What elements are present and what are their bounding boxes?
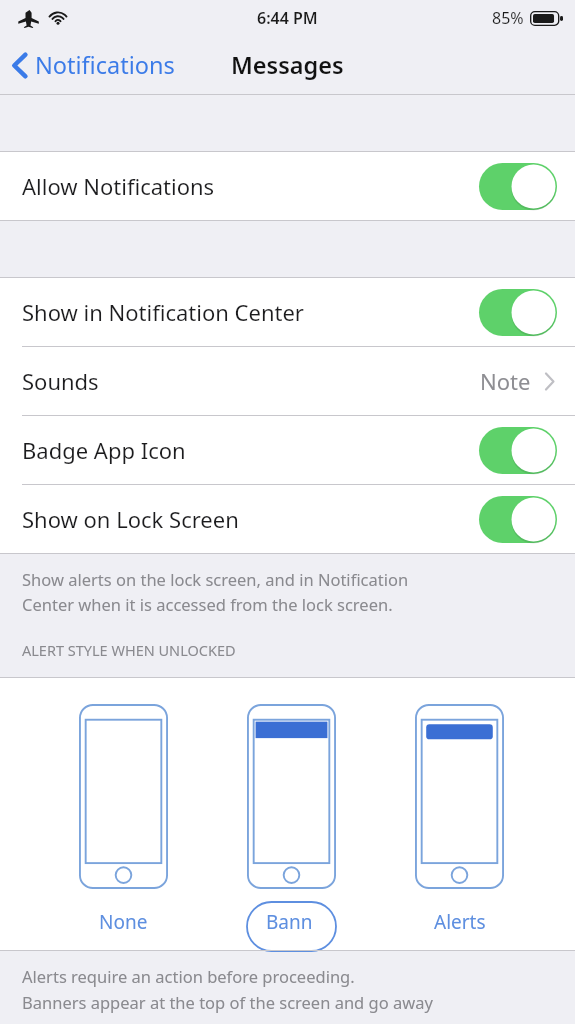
staticText: Show on Lock Screen <box>22 504 479 534</box>
button[interactable]: Banners <box>247 704 336 951</box>
staticText: Badge App Icon <box>22 435 479 465</box>
staticText: Alerts <box>434 909 486 935</box>
button[interactable]: Notifications <box>0 43 185 87</box>
staticText: Show alerts on the lock screen, and in N… <box>22 568 409 616</box>
staticText: Allow Notifications <box>22 171 479 201</box>
button[interactable]: None <box>79 704 168 942</box>
button[interactable]: Toggle setting <box>479 289 557 336</box>
staticText: Banners <box>266 909 317 944</box>
staticText: Show in Notification Center <box>22 297 479 327</box>
button[interactable]: Toggle setting <box>479 163 557 210</box>
staticText: Sounds <box>22 366 480 396</box>
staticText: 85% <box>492 7 524 29</box>
button[interactable]: Sounds <box>0 347 575 415</box>
button[interactable]: Toggle setting <box>479 496 557 543</box>
staticText: 6:44 PM <box>257 7 318 29</box>
staticText: None <box>99 909 148 935</box>
staticText: Note <box>480 366 531 396</box>
button[interactable]: Allow Notifications <box>0 152 575 220</box>
button[interactable]: Alerts <box>415 704 504 942</box>
button[interactable]: Toggle setting <box>479 427 557 474</box>
button[interactable]: Show on Lock Screen <box>0 485 575 553</box>
staticText: Alerts require an action before proceedi… <box>22 965 433 1014</box>
button[interactable]: Badge App Icon <box>0 416 575 484</box>
staticText: Notifications <box>35 49 175 81</box>
staticText: Messages <box>231 49 344 81</box>
staticText: ALERT STYLE WHEN UNLOCKED <box>22 640 236 660</box>
button[interactable]: Show in Notification Center <box>0 278 575 346</box>
